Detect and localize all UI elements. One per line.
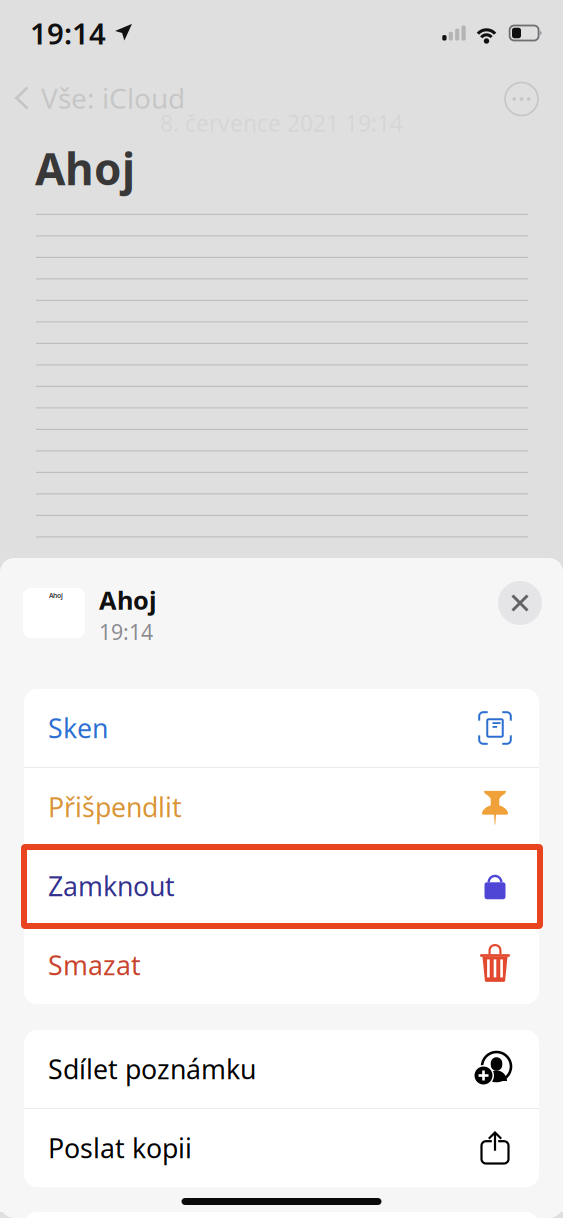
staticText: Zamknout: [48, 868, 175, 904]
staticText: Ahoj: [99, 583, 157, 617]
staticText: Přišpendlit: [48, 789, 182, 825]
button[interactable]: Zamknout: [24, 847, 539, 925]
staticText: 19:14: [99, 618, 153, 646]
button[interactable]: Poslat kopii: [24, 1109, 539, 1187]
staticText: Poslat kopii: [48, 1130, 192, 1166]
button[interactable]: Sken: [24, 689, 539, 767]
staticText: Ahoj: [49, 591, 63, 600]
button[interactable]: Vše: iCloud: [15, 79, 185, 117]
button[interactable]: Sdílet poznámku: [24, 1030, 539, 1108]
button[interactable]: More options: [505, 82, 538, 115]
staticText: Ahoj: [35, 139, 135, 197]
button[interactable]: Close: [498, 581, 542, 625]
staticText: 19:14: [30, 13, 106, 52]
button[interactable]: Smazat: [24, 926, 539, 1004]
staticText: Smazat: [48, 947, 141, 983]
button[interactable]: Přišpendlit: [24, 768, 539, 846]
staticText: Vše: iCloud: [41, 79, 185, 117]
staticText: Sken: [48, 710, 108, 746]
staticText: 8. července 2021 19:14: [160, 108, 403, 138]
staticText: Sdílet poznámku: [48, 1051, 256, 1087]
